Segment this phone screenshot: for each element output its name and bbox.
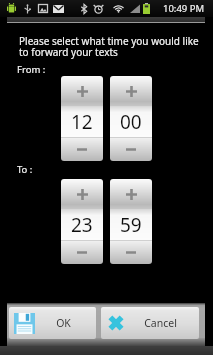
button[interactable]: Decrease bbox=[61, 241, 103, 264]
button[interactable]: OK bbox=[9, 307, 96, 339]
staticText: 00 bbox=[120, 109, 142, 135]
button[interactable]: Decrease bbox=[110, 138, 152, 161]
staticText: Cancel bbox=[144, 316, 177, 330]
button[interactable]: Increase bbox=[61, 179, 103, 209]
button[interactable]: Cancel bbox=[101, 307, 199, 339]
staticText: To : bbox=[17, 163, 33, 176]
staticText: 59 bbox=[120, 212, 142, 238]
staticText: OK bbox=[56, 316, 71, 330]
staticText: From : bbox=[17, 63, 46, 76]
button[interactable]: Decrease bbox=[110, 241, 152, 264]
button[interactable]: Increase bbox=[110, 76, 152, 106]
staticText: 23 bbox=[71, 212, 93, 238]
staticText: 10:49 PM bbox=[163, 2, 205, 15]
button[interactable]: Decrease bbox=[61, 138, 103, 161]
staticText: 12 bbox=[71, 109, 93, 135]
button[interactable]: Increase bbox=[110, 179, 152, 209]
button[interactable]: Increase bbox=[61, 76, 103, 106]
staticText: Please select what time you would like t… bbox=[19, 34, 201, 59]
